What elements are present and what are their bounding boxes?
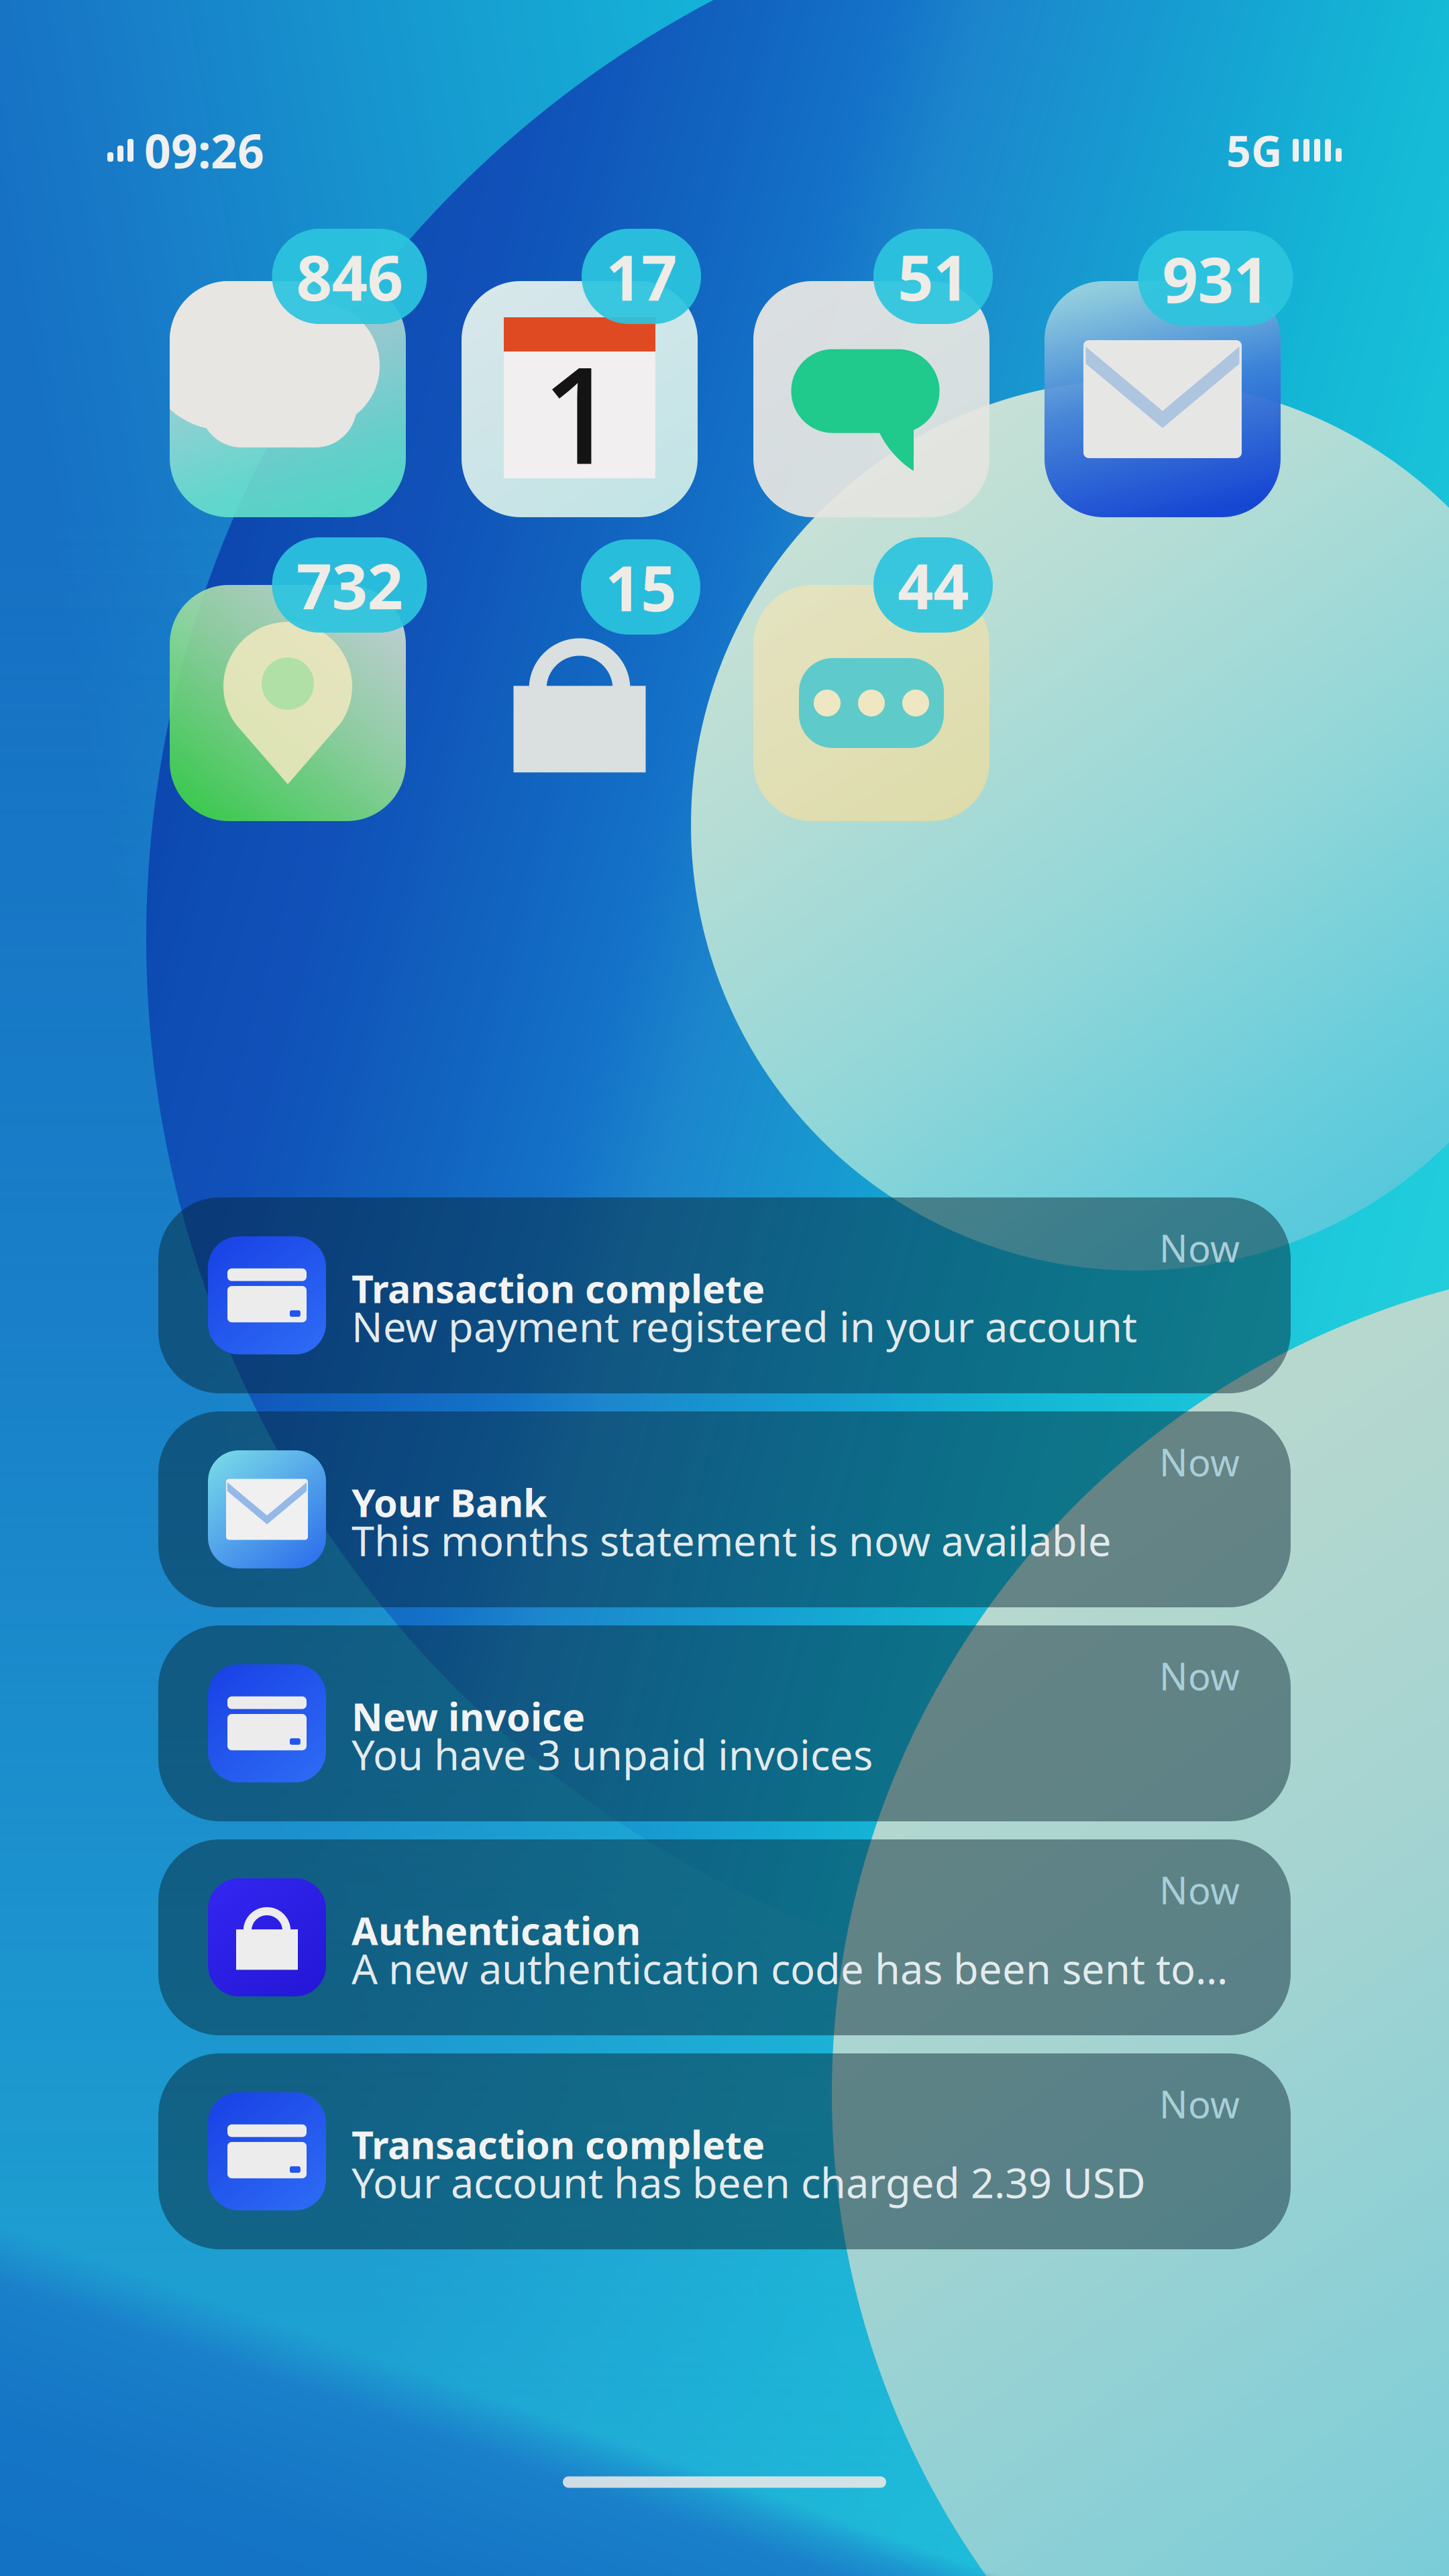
button[interactable]: Transaction complete [158,2053,1291,2249]
staticText: Now [1159,1437,1240,1487]
staticText: Transaction complete [352,2119,765,2170]
staticText: 09:26 [144,119,264,181]
staticText: 44 [898,543,969,626]
button[interactable]: Maps [170,585,406,821]
button[interactable]: Notes [753,585,989,821]
staticText: Your account has been charged 2.39 USD [352,2155,1146,2210]
staticText: New invoice [352,1691,585,1742]
staticText: A new authentication code has been sent … [352,1941,1228,1996]
button[interactable]: Calendar [462,281,698,517]
staticText: 51 [898,235,969,318]
button[interactable]: Weather [170,281,406,517]
button[interactable]: Transaction complete [158,1197,1291,1393]
staticText: This months statement is now available [352,1513,1112,1568]
staticText: You have 3 unpaid invoices [352,1727,873,1782]
staticText: New payment registered in your account [352,1299,1137,1354]
staticText: 1 [541,323,618,501]
button[interactable]: Authentication [158,1839,1291,2035]
button[interactable]: New invoice [158,1625,1291,1821]
staticText: Now [1159,1651,1240,1701]
button[interactable]: Mail [1044,281,1281,517]
staticText: 931 [1162,237,1269,320]
button[interactable]: Your Bank [158,1411,1291,1607]
staticText: 17 [606,235,677,318]
staticText: Authentication [352,1905,641,1956]
button[interactable]: Messages [753,281,989,517]
staticText: Your Bank [352,1477,547,1528]
staticText: Now [1159,1223,1240,1273]
staticText: Now [1159,2079,1240,2129]
staticText: 5G [1226,122,1282,179]
staticText: Now [1159,1865,1240,1915]
staticText: 732 [296,543,403,626]
button[interactable]: Lock [462,585,698,821]
staticText: Transaction complete [352,1263,765,1314]
staticText: 15 [605,545,676,629]
staticText: 846 [296,235,403,318]
